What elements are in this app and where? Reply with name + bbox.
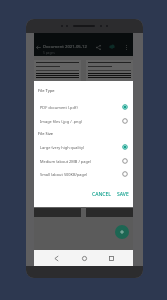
button[interactable]: More options bbox=[121, 42, 131, 52]
staticText: Medium (about 2MB / page) bbox=[40, 159, 122, 164]
button[interactable]: Back bbox=[33, 42, 43, 52]
button[interactable]: Medium (about 2MB / page) bbox=[34, 154, 133, 168]
button[interactable]: PDF document (.pdf) bbox=[34, 100, 133, 114]
staticText: Image files (.jpg / .png) bbox=[40, 119, 122, 124]
button[interactable]: Add page bbox=[115, 225, 129, 239]
staticText: 5 pages bbox=[43, 51, 55, 55]
button[interactable]: CANCEL bbox=[90, 190, 113, 199]
button[interactable]: SAVE bbox=[115, 190, 131, 199]
button[interactable]: Back bbox=[50, 252, 62, 264]
button[interactable]: Save to cloud bbox=[107, 42, 117, 52]
button[interactable]: Home bbox=[78, 252, 90, 264]
button[interactable] bbox=[86, 60, 133, 217]
staticText: File Size bbox=[38, 131, 54, 136]
staticText: Small (about 500KB/page) bbox=[40, 172, 122, 177]
button[interactable]: Recent apps bbox=[105, 252, 117, 264]
staticText: SAVE bbox=[117, 191, 129, 198]
button[interactable] bbox=[34, 60, 81, 217]
staticText: CANCEL bbox=[92, 191, 111, 198]
staticText: PDF document (.pdf) bbox=[40, 105, 122, 110]
button[interactable]: Small (about 500KB/page) bbox=[34, 167, 133, 181]
button[interactable]: Image files (.jpg / .png) bbox=[34, 114, 133, 128]
staticText: File Type bbox=[38, 88, 55, 93]
button[interactable]: Share bbox=[93, 42, 103, 52]
staticText: Document 2021-05-12 bbox=[43, 44, 87, 50]
button[interactable]: Large (very high quality) bbox=[34, 140, 133, 154]
staticText: Large (very high quality) bbox=[40, 145, 122, 150]
